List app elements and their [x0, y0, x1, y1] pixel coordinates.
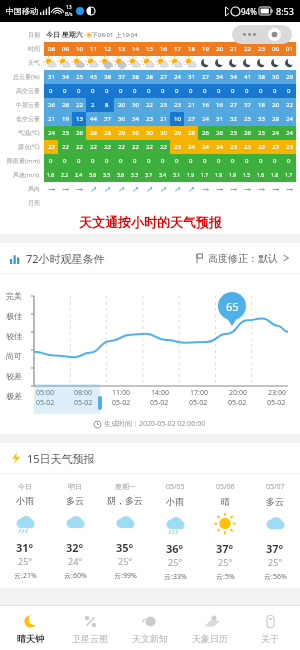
- staticText: 05-02: [112, 398, 131, 408]
- staticText: 气温(℃): [18, 129, 40, 137]
- button[interactable]: 05/07: [250, 482, 300, 582]
- button[interactable]: 明日: [50, 482, 100, 581]
- staticText: 25°: [218, 556, 233, 568]
- staticText: 晴天钟: [17, 633, 44, 644]
- staticText: 1.7: [201, 172, 209, 179]
- staticText: 34: [132, 115, 139, 123]
- staticText: 时间: [28, 45, 40, 53]
- staticText: 2: [91, 101, 95, 109]
- button[interactable]: 72小时观星条件: [0, 243, 300, 273]
- staticText: 0: [259, 157, 263, 165]
- staticText: 多云: [66, 495, 84, 506]
- staticText: 中层云量: [16, 101, 40, 109]
- button[interactable]: 关于: [240, 606, 300, 650]
- staticText: 22: [90, 143, 97, 151]
- staticText: 17: [174, 45, 181, 53]
- staticText: 0: [161, 157, 165, 165]
- button[interactable]: Range handle: [98, 396, 102, 410]
- staticText: 30: [132, 129, 139, 137]
- staticText: 34: [216, 73, 223, 81]
- staticText: 25: [160, 101, 167, 109]
- staticText: 12: [104, 45, 111, 53]
- staticText: 1.5: [243, 172, 251, 179]
- staticText: 0: [91, 157, 95, 165]
- button[interactable]: 星期一: [100, 482, 150, 581]
- staticText: 0: [175, 157, 179, 165]
- staticText: 23: [272, 143, 279, 151]
- staticText: 小雨: [166, 496, 184, 507]
- staticText: 30: [160, 129, 167, 137]
- button[interactable]: More options: [232, 25, 292, 44]
- staticText: 1.6: [47, 172, 55, 179]
- staticText: 18: [188, 45, 195, 53]
- staticText: 20: [272, 101, 279, 109]
- staticText: 0: [287, 157, 291, 165]
- staticText: 30: [272, 73, 279, 81]
- staticText: 0: [133, 157, 137, 165]
- staticText: 8:53: [276, 5, 294, 17]
- staticText: 0: [49, 157, 53, 165]
- staticText: 0: [63, 87, 67, 95]
- staticText: 23:00: [268, 388, 286, 398]
- button[interactable]: 天文新知: [120, 606, 180, 650]
- staticText: 下06:01: [92, 31, 114, 39]
- staticText: 29: [174, 129, 181, 137]
- staticText: 降雨量(mm): [7, 157, 40, 165]
- staticText: 29: [118, 129, 125, 137]
- staticText: 14:00: [151, 388, 169, 398]
- staticText: 24: [48, 129, 55, 137]
- staticText: 25: [258, 129, 265, 137]
- staticText: 22: [76, 143, 83, 151]
- staticText: 94%: [241, 6, 257, 17]
- staticText: 25°: [18, 555, 33, 567]
- button[interactable]: 晴天钟: [0, 606, 60, 650]
- button[interactable]: 今日: [0, 482, 50, 581]
- staticText: 3.5: [103, 172, 111, 179]
- staticText: 37: [118, 73, 125, 81]
- button[interactable]: 05/06: [200, 482, 250, 582]
- staticText: 05-02: [36, 398, 55, 408]
- button[interactable]: 天象日历: [180, 606, 240, 650]
- staticText: 41: [244, 73, 251, 81]
- staticText: 24: [202, 115, 209, 123]
- staticText: 36: [118, 115, 125, 123]
- staticText: 22: [62, 143, 69, 151]
- button[interactable]: 15日天气预报: [0, 443, 300, 473]
- staticText: 天文新知: [132, 633, 168, 644]
- staticText: 阴，多云: [107, 495, 143, 506]
- staticText: 28: [188, 129, 195, 137]
- staticText: 19: [62, 115, 69, 123]
- staticText: 25°: [118, 555, 133, 567]
- button[interactable]: 05/05: [150, 482, 200, 582]
- staticText: 0: [77, 157, 81, 165]
- staticText: 23: [258, 45, 265, 53]
- staticText: 3.7: [145, 172, 153, 179]
- staticText: 26: [216, 129, 223, 137]
- staticText: 08: [48, 45, 55, 53]
- staticText: 0: [161, 87, 165, 95]
- staticText: 0: [189, 87, 193, 95]
- staticText: 关于: [261, 633, 279, 644]
- staticText: 32: [230, 115, 237, 123]
- staticText: 72小时观星条件: [26, 251, 105, 266]
- staticText: 天文通按小时的天气预报: [79, 214, 222, 230]
- staticText: 27: [160, 73, 167, 81]
- staticText: 31: [48, 73, 55, 81]
- staticText: 30: [132, 101, 139, 109]
- staticText: 37°: [266, 541, 284, 556]
- staticText: 天象日历: [192, 633, 228, 644]
- staticText: 24: [216, 143, 223, 151]
- staticText: 31: [216, 115, 223, 123]
- staticText: 云:99%: [114, 571, 137, 581]
- button[interactable]: 卫星云图: [60, 606, 120, 650]
- staticText: 26: [202, 129, 209, 137]
- staticText: 17:00: [190, 388, 208, 398]
- staticText: 22: [146, 143, 153, 151]
- staticText: 高空云量: [16, 87, 40, 95]
- staticText: 今日: [18, 482, 32, 491]
- staticText: 日期: [28, 31, 40, 39]
- staticText: 27: [202, 73, 209, 81]
- staticText: 总云量(%): [13, 73, 40, 81]
- staticText: 14: [132, 45, 139, 53]
- staticText: 0: [189, 157, 193, 165]
